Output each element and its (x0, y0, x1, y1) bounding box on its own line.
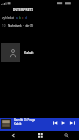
staticText: d (25, 16, 27, 20)
staticText: Banditi Di Praga (14, 118, 36, 122)
staticText: Nahrávek · de (1) (8, 24, 34, 28)
button[interactable]: vyhledat (2, 16, 27, 20)
staticText: c (22, 16, 24, 20)
staticText: Kabát (24, 50, 34, 55)
staticText: INTERPRETI (13, 7, 33, 12)
staticText: b (19, 16, 21, 20)
staticText: Kabát (14, 122, 22, 126)
button[interactable]: 10 (2, 24, 34, 28)
staticText: 10 (2, 24, 6, 28)
button[interactable]: Back (0, 131, 27, 140)
button[interactable]: Start (27, 131, 53, 140)
button[interactable]: Playback controls (52, 118, 79, 131)
button[interactable]: INTERPRETI (13, 7, 33, 12)
button[interactable]: Kabát (0, 43, 79, 62)
staticText: vyhledat (2, 16, 14, 20)
button[interactable]: Search (53, 131, 79, 140)
staticText: a (16, 16, 18, 20)
